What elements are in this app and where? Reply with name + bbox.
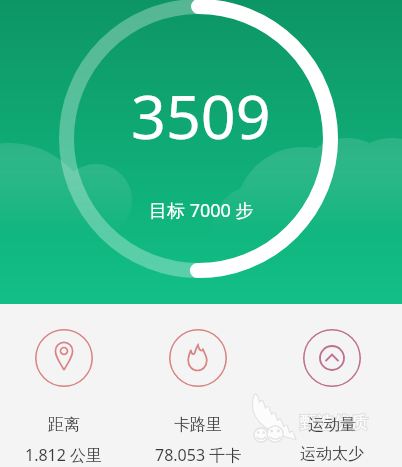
staticText: 卡路里 bbox=[174, 415, 222, 435]
staticText: 甄选优质 bbox=[300, 412, 368, 433]
other: 运动量 bbox=[303, 329, 361, 387]
staticText: 目标 7000 步 bbox=[149, 198, 254, 223]
staticText: 运动量 bbox=[308, 415, 356, 435]
staticText: 甄选优质 bbox=[300, 412, 368, 433]
button[interactable]: 卡路里 bbox=[131, 329, 265, 466]
staticText: 运动太少 bbox=[300, 444, 364, 464]
button[interactable]: 距离 bbox=[0, 329, 131, 466]
staticText: 78.053 千卡 bbox=[155, 444, 242, 466]
other: 卡路里 bbox=[169, 329, 227, 387]
staticText: 3509 bbox=[131, 74, 271, 157]
staticText: 距离 bbox=[48, 415, 80, 435]
staticText: 1.812 公里 bbox=[25, 444, 103, 466]
other: 距离 bbox=[35, 329, 93, 387]
button[interactable]: 运动量 bbox=[265, 329, 399, 464]
